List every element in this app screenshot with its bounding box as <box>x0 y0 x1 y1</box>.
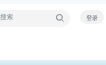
staticText: 搜索 <box>0 13 14 21</box>
staticText: 登录 <box>86 14 98 21</box>
button[interactable]: 搜索 <box>0 10 70 27</box>
button[interactable]: Search <box>54 13 65 24</box>
button[interactable]: 登录 <box>80 10 104 24</box>
